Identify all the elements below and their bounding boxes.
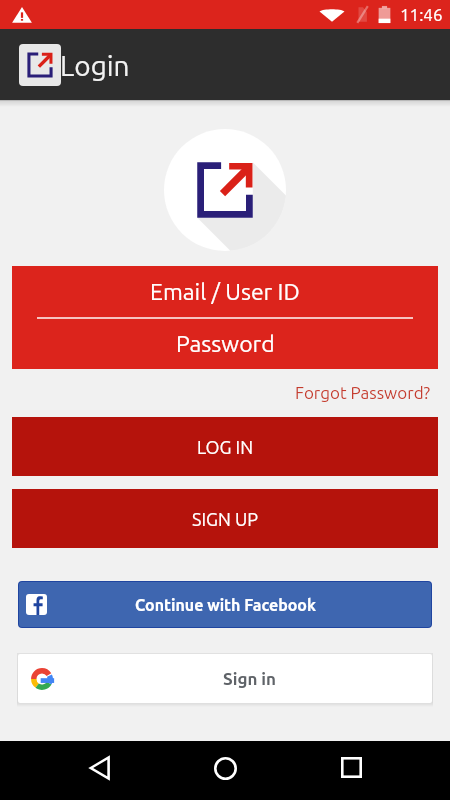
- button[interactable]: Email / User ID: [12, 266, 438, 317]
- button[interactable]: Forgot Password?: [291, 380, 435, 405]
- staticText: 11:46: [400, 5, 443, 24]
- button[interactable]: Password: [12, 319, 438, 369]
- button[interactable]: LOG IN: [12, 417, 438, 476]
- button[interactable]: Home: [199, 741, 251, 793]
- button[interactable]: Continue with Facebook: [19, 582, 431, 627]
- staticText: Email / User ID: [150, 279, 300, 305]
- staticText: LOG IN: [197, 437, 254, 457]
- staticText: Forgot Password?: [295, 383, 431, 402]
- button[interactable]: SIGN UP: [12, 489, 438, 548]
- staticText: SIGN UP: [192, 509, 259, 529]
- button[interactable]: Back: [74, 741, 126, 793]
- staticText: Continue with Facebook: [135, 596, 316, 614]
- staticText: Login: [60, 50, 130, 81]
- staticText: Sign in: [223, 669, 277, 688]
- button[interactable]: Recents: [325, 741, 377, 793]
- button[interactable]: Sign in: [18, 654, 432, 703]
- staticText: Password: [176, 331, 275, 357]
